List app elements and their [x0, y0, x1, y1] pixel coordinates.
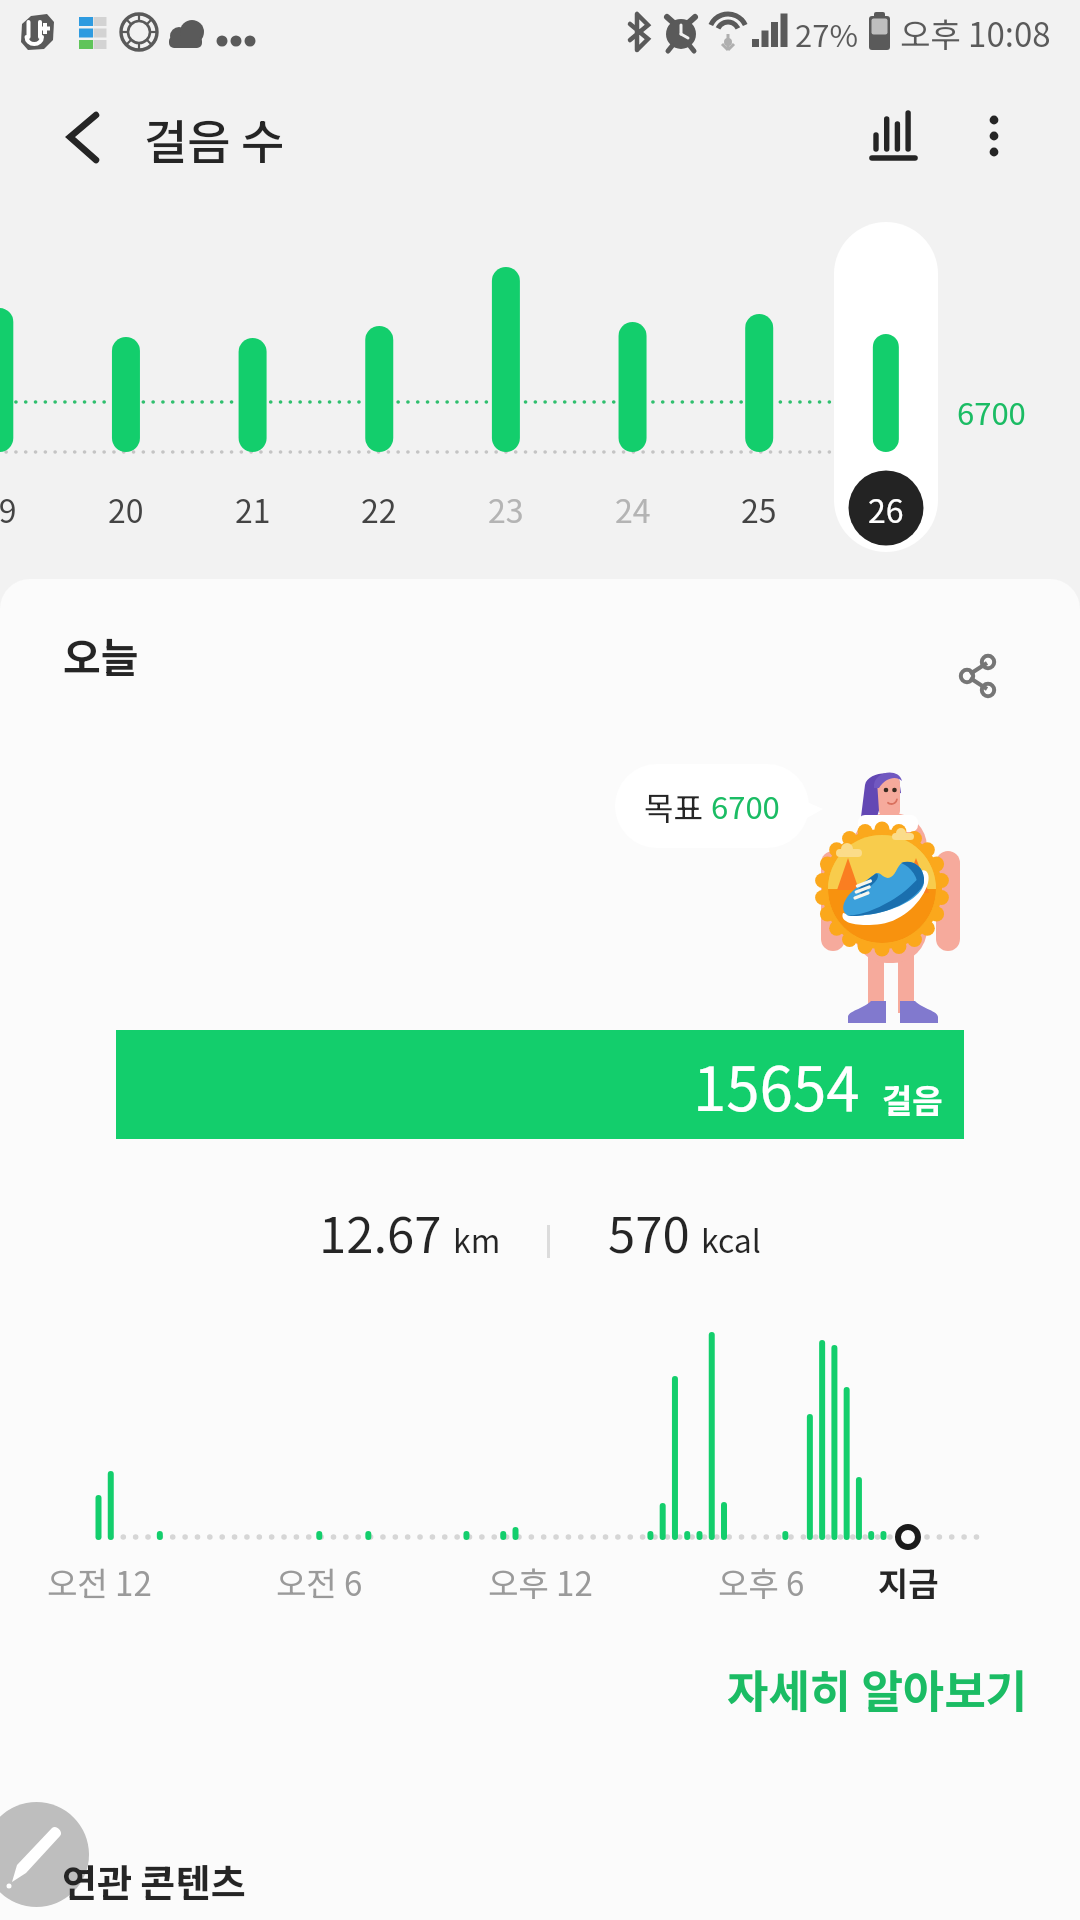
button[interactable]: Back — [40, 94, 126, 180]
staticText: 6700 — [711, 783, 780, 828]
staticText: 걸음 — [882, 1075, 943, 1123]
staticText: 오전 6 — [276, 1558, 363, 1604]
staticText: 19 — [0, 486, 17, 530]
staticText: 오후 6 — [718, 1558, 805, 1604]
staticText: 25 — [741, 486, 777, 530]
staticText: 12.67 — [319, 1196, 442, 1266]
staticText: 연관 콘텐츠 — [62, 1853, 246, 1908]
button[interactable]: Chart — [850, 92, 934, 176]
staticText: 오후 12 — [488, 1558, 593, 1604]
staticText: 26 — [868, 486, 904, 530]
staticText: 15654 — [693, 1041, 860, 1128]
staticText: 지금 — [878, 1558, 939, 1604]
staticText: 오늘 — [63, 625, 139, 684]
staticText: 오후 10:08 — [900, 9, 1051, 57]
button[interactable]: Share — [936, 630, 1024, 718]
staticText: 21 — [235, 486, 271, 530]
button[interactable]: 자세히 알아보기 — [712, 1646, 1042, 1730]
staticText: 570 — [608, 1196, 690, 1266]
staticText: 27% — [795, 11, 858, 56]
staticText: 6700 — [957, 389, 1026, 434]
staticText: 오전 12 — [47, 1558, 152, 1604]
button[interactable]: Edit — [0, 1802, 89, 1907]
staticText: 23 — [488, 486, 524, 530]
staticText: kcal — [701, 1216, 761, 1262]
staticText: 자세히 알아보기 — [727, 1656, 1028, 1721]
staticText: 목표 — [644, 783, 711, 829]
staticText: 20 — [108, 486, 144, 530]
staticText: 걸음 수 — [144, 104, 285, 172]
staticText: km — [453, 1216, 501, 1262]
button[interactable]: More options — [952, 88, 1036, 172]
staticText: 22 — [361, 486, 397, 530]
staticText: 24 — [615, 486, 651, 530]
